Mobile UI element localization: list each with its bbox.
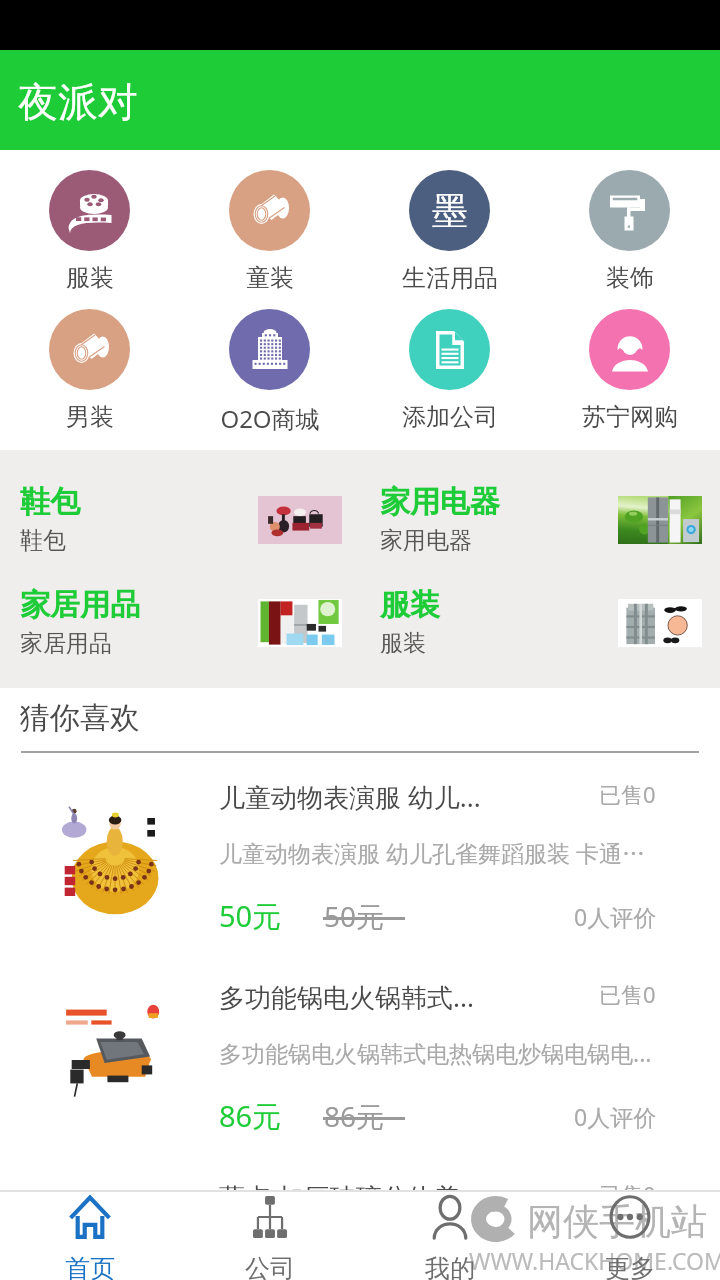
- button[interactable]: 家用电器: [360, 466, 720, 569]
- button[interactable]: 儿童动物表演服 幼儿...: [0, 765, 720, 965]
- staticText: 儿童动物表演服 幼儿...: [219, 779, 589, 815]
- staticText: 家用电器: [380, 526, 472, 555]
- staticText: 儿童动物表演服 幼儿孔雀舞蹈服装 卡通演...: [219, 837, 661, 868]
- staticText: 已售0: [599, 1179, 656, 1209]
- staticText: 首页: [0, 1253, 180, 1280]
- staticText: 童装: [180, 263, 360, 293]
- staticText: 0人评价: [574, 901, 657, 932]
- other: 更多: [609, 1195, 651, 1239]
- staticText: 男装: [0, 402, 180, 432]
- staticText: 公司: [180, 1253, 360, 1280]
- other: 我的: [433, 1195, 467, 1239]
- staticText: 已售0: [599, 779, 656, 809]
- staticText: 家居用品: [20, 586, 140, 624]
- staticText: 鞋包: [20, 483, 80, 521]
- button[interactable]: 家居用品: [0, 569, 360, 672]
- staticText: 多功能锅电火锅韩式...: [219, 979, 589, 1015]
- button[interactable]: 童装: [180, 143, 360, 282]
- button[interactable]: 蘸点 加厚玻璃分体养...: [0, 1165, 720, 1280]
- staticText: 生活用品: [360, 263, 540, 293]
- button[interactable]: 男装: [0, 282, 180, 421]
- staticText: 86元: [219, 1096, 282, 1136]
- button[interactable]: 墨: [360, 143, 540, 282]
- staticText: 家居用品: [20, 629, 112, 658]
- staticText: 更多: [540, 1253, 720, 1280]
- staticText: 网侠手机站: [527, 1199, 707, 1244]
- staticText: O2O商城: [180, 402, 360, 435]
- staticText: 蘸点 加厚玻璃分体养生壶多功能家用电热...: [219, 1237, 661, 1268]
- staticText: 服装: [0, 263, 180, 293]
- staticText: 多功能锅电火锅韩式电热锅电炒锅电锅电...: [219, 1037, 661, 1068]
- staticText: WWW.HACKHOME.COM: [469, 1245, 720, 1276]
- staticText: 0人评价: [574, 1101, 657, 1132]
- button[interactable]: 公司: [180, 1192, 360, 1280]
- staticText: 苏宁网购: [540, 402, 720, 432]
- staticText: 夜派对: [18, 77, 138, 127]
- staticText: 猜你喜欢: [20, 699, 140, 737]
- button[interactable]: 更多: [540, 1192, 720, 1280]
- button[interactable]: 多功能锅电火锅韩式...: [0, 965, 720, 1165]
- button[interactable]: 添加公司: [360, 282, 540, 421]
- button[interactable]: 苏宁网购: [540, 282, 720, 421]
- staticText: 添加公司: [360, 402, 540, 432]
- button[interactable]: 装饰: [540, 143, 720, 282]
- staticText: 装饰: [540, 263, 720, 293]
- staticText: 我的: [360, 1253, 540, 1280]
- button[interactable]: 首页: [0, 1192, 180, 1280]
- staticText: 蘸点 加厚玻璃分体养...: [219, 1179, 589, 1215]
- button[interactable]: 我的: [360, 1192, 540, 1280]
- staticText: 50元: [324, 897, 385, 935]
- staticText: 家用电器: [380, 483, 500, 521]
- button[interactable]: O2O商城: [180, 282, 360, 421]
- other: 公司: [253, 1195, 287, 1239]
- other: 首页: [68, 1195, 112, 1239]
- staticText: 服装: [380, 629, 426, 658]
- button[interactable]: 鞋包: [0, 466, 360, 569]
- staticText: 服装: [380, 586, 440, 624]
- staticText: 鞋包: [20, 526, 66, 555]
- staticText: 50元: [219, 896, 282, 936]
- staticText: 已售0: [599, 979, 656, 1009]
- staticText: 86元: [324, 1097, 385, 1135]
- button[interactable]: 服装: [0, 143, 180, 282]
- button[interactable]: 服装: [360, 569, 720, 672]
- staticText: 墨: [432, 188, 468, 233]
